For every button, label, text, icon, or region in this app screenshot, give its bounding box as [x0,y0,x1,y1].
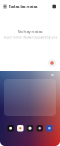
button[interactable]: Nueva nota [48,59,56,67]
button[interactable]: Fotos [17,125,24,131]
button[interactable]: Mensajes [46,125,53,131]
button[interactable]: Música [36,125,43,131]
button[interactable]: Todas las notas [0,1,37,12]
staticText: No hay notas [17,29,42,34]
button[interactable]: Más opciones [52,2,60,11]
button[interactable]: Archivos [7,125,14,131]
staticText: Todas las notas [8,4,37,9]
button[interactable]: Safari [27,125,33,131]
staticText: Toca el botón Nueva nota para crear una [3,36,56,39]
